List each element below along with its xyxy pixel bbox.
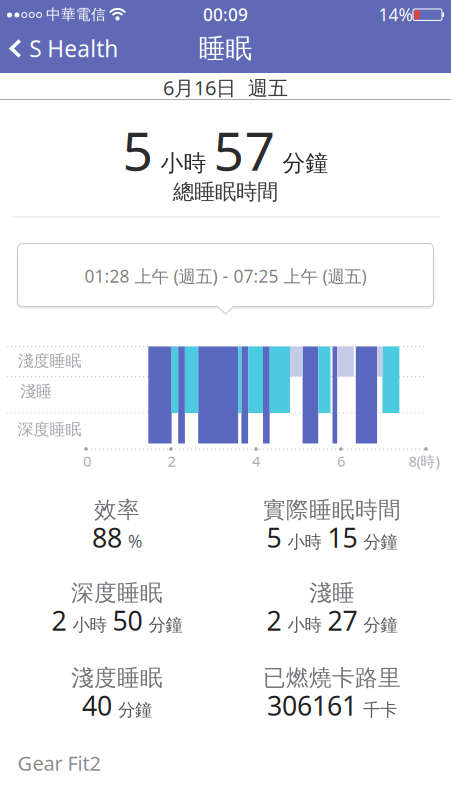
staticText: 2	[266, 603, 281, 638]
staticText: 總睡眠時間	[173, 179, 278, 205]
staticText: 57	[213, 115, 275, 185]
staticText: 小時	[287, 614, 321, 636]
staticText: 6月16日 週五	[163, 74, 288, 101]
staticText: S Health	[29, 33, 118, 63]
staticText: 8(時)	[408, 451, 439, 471]
staticText: 306161	[267, 688, 357, 723]
staticText: %	[128, 530, 142, 553]
staticText: 14%	[378, 3, 412, 26]
staticText: Gear Fit2	[17, 750, 100, 776]
staticText: 實際睡眠時間	[263, 496, 401, 524]
staticText: 千卡	[363, 699, 397, 721]
staticText: 深度睡眠	[71, 579, 163, 607]
staticText: 2	[167, 451, 175, 471]
staticText: 40	[82, 688, 112, 723]
staticText: 淺度睡眠	[17, 351, 81, 371]
button[interactable]: S Health	[10, 33, 118, 63]
staticText: 中華電信	[46, 5, 106, 23]
staticText: 15	[327, 520, 357, 555]
staticText: 分鐘	[148, 614, 182, 636]
staticText: 小時	[287, 531, 321, 553]
staticText: 淺度睡眠	[71, 664, 163, 692]
staticText: 分鐘	[363, 531, 397, 553]
staticText: 淺睡	[20, 382, 52, 401]
staticText: 27	[327, 603, 357, 638]
staticText: 效率	[94, 496, 140, 524]
staticText: 4	[252, 451, 260, 471]
staticText: 5	[266, 520, 281, 555]
staticText: 分鐘	[363, 614, 397, 636]
staticText: 淺睡	[309, 579, 355, 607]
staticText: 深度睡眠	[17, 420, 81, 439]
staticText: 睡眠	[198, 32, 252, 65]
staticText: 00:09	[203, 3, 248, 26]
staticText: 分鐘	[282, 149, 328, 177]
staticText: 50	[112, 603, 142, 638]
staticText: 2	[51, 603, 66, 638]
staticText: 5	[122, 115, 153, 185]
staticText: 小時	[72, 614, 106, 636]
staticText: 01:28 上午 (週五) - 07:25 上午 (週五)	[84, 264, 366, 287]
staticText: 88	[92, 520, 122, 555]
staticText: 0	[83, 451, 91, 471]
staticText: 6	[337, 451, 345, 471]
staticText: 已燃燒卡路里	[263, 664, 401, 692]
staticText: 分鐘	[118, 699, 152, 721]
staticText: 小時	[160, 149, 206, 177]
